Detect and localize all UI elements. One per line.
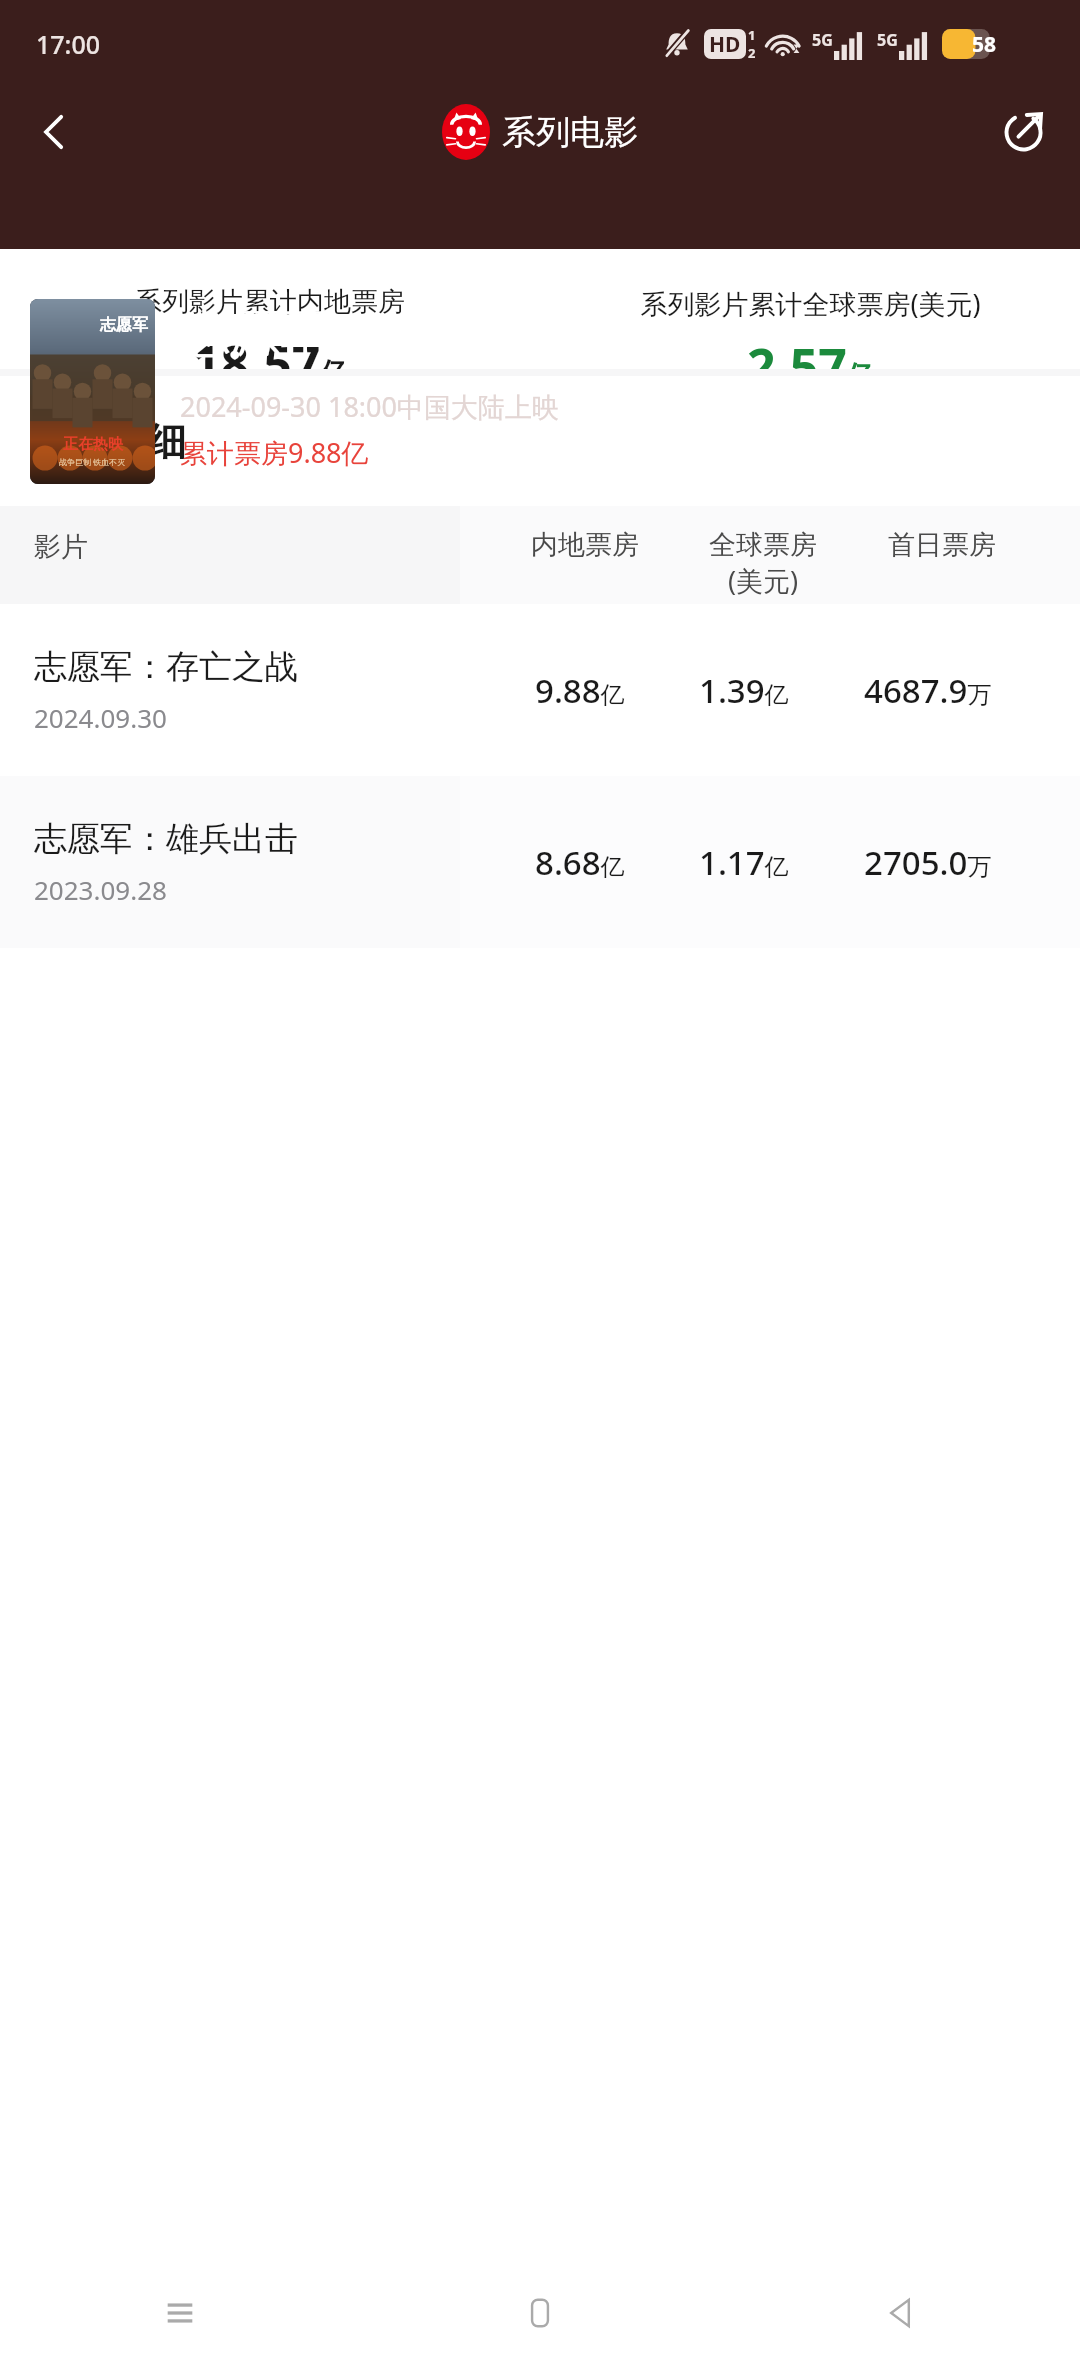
staticText: 志愿军：存亡之战 (180, 303, 580, 366)
staticText: 战争巨制 铁血不灭 (59, 456, 126, 467)
staticText: 2 (748, 44, 756, 62)
staticText: 志愿军 (100, 315, 148, 335)
staticText: 2.57亿 (747, 332, 874, 369)
button[interactable]: Share (988, 96, 1060, 168)
staticText: (美元) (728, 562, 799, 599)
staticText: 2023.09.28 (34, 872, 167, 907)
button[interactable]: Back (18, 96, 90, 168)
staticText: 8.68亿 (535, 840, 625, 885)
staticText: 系列电影 (502, 111, 638, 154)
staticText: 首日票房 (888, 528, 996, 562)
button[interactable]: 系列电影 (442, 104, 638, 160)
button[interactable]: 志愿军：存亡之战 (0, 604, 1080, 776)
button[interactable]: Recent apps (0, 2250, 360, 2376)
staticText: 1.17亿 (699, 840, 789, 885)
staticText: 影片 (34, 530, 88, 564)
staticText: 志愿军：雄兵出击 (34, 818, 298, 860)
staticText: 正在热映 (63, 435, 123, 454)
button[interactable]: 志愿军：雄兵出击 (0, 776, 1080, 948)
staticText: 4687.9万 (864, 668, 992, 713)
staticText: 2024-09-30 18:00中国大陆上映 (180, 388, 559, 425)
button[interactable]: 系列影片累计全球票房(美元) (540, 285, 1080, 369)
staticText: 内地票房 (531, 528, 639, 562)
button[interactable]: 志愿军 (30, 299, 1080, 484)
staticText: 影片明细 (34, 418, 186, 466)
button[interactable]: Back (720, 2250, 1080, 2376)
staticText: 18.57亿 (192, 329, 348, 369)
staticText: 累计票房9.88亿 (180, 434, 369, 471)
button[interactable]: 系列影片累计内地票房 (0, 285, 540, 369)
button[interactable]: Home (360, 2250, 720, 2376)
staticText: 1 (748, 26, 756, 44)
staticText: 1.39亿 (699, 668, 789, 713)
staticText: 全球票房 (709, 528, 817, 562)
staticText: HD (709, 30, 741, 59)
staticText: 系列影片累计内地票房 (135, 285, 405, 319)
staticText: 2705.0万 (864, 840, 992, 885)
staticText: 2024.09.30 (34, 700, 167, 735)
staticText: 17:00 (36, 27, 101, 61)
staticText: 9.88亿 (535, 668, 625, 713)
staticText: 5G (877, 29, 898, 51)
staticText: 系列影片累计全球票房(美元) (640, 285, 981, 322)
staticText: 58 (972, 30, 997, 59)
staticText: 志愿军：存亡之战 (34, 646, 298, 688)
staticText: 5G (812, 29, 833, 51)
